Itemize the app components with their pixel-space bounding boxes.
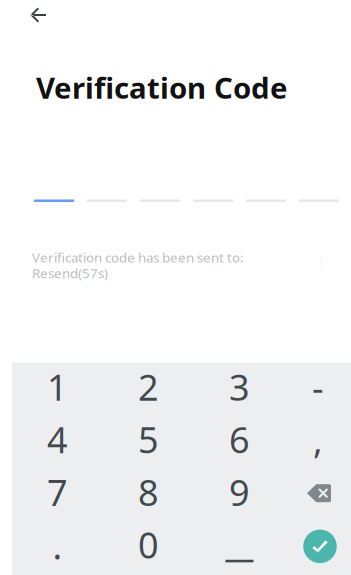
staticText: ,: [313, 415, 323, 463]
staticText: 9: [229, 468, 250, 516]
staticText: .: [52, 522, 62, 569]
button[interactable]: 9: [194, 466, 285, 518]
button[interactable]: 0: [103, 518, 194, 571]
staticText: 1: [47, 363, 68, 411]
staticText: 6: [229, 415, 250, 463]
button[interactable]: Comma: [285, 413, 351, 466]
staticText: -: [312, 363, 324, 411]
button[interactable]: 8: [103, 466, 194, 518]
staticText: 0: [138, 521, 159, 568]
staticText: Verification code has been sent to:: [32, 249, 244, 266]
staticText: 4: [47, 415, 68, 463]
staticText: Resend(57s): [32, 264, 108, 282]
staticText: 2: [138, 363, 159, 411]
button[interactable]: Confirm: [285, 518, 351, 571]
staticText: 7: [47, 468, 68, 516]
button[interactable]: Delete: [285, 466, 351, 518]
button[interactable]: 3: [194, 360, 285, 413]
button[interactable]: 4: [12, 413, 103, 466]
button[interactable]: 6: [194, 413, 285, 466]
button[interactable]: 2: [103, 360, 194, 413]
button[interactable]: 5: [103, 413, 194, 466]
button[interactable]: [194, 518, 285, 571]
staticText: 3: [229, 363, 250, 411]
button[interactable]: .: [12, 518, 103, 571]
button[interactable]: Dash: [285, 360, 351, 413]
button[interactable]: 1: [12, 360, 103, 413]
staticText: 5: [138, 415, 159, 463]
staticText: 8: [138, 468, 159, 516]
button[interactable]: Resend(57s): [32, 264, 108, 282]
staticText: i: [320, 253, 323, 269]
button[interactable]: 7: [12, 466, 103, 518]
staticText: Verification Code: [36, 68, 288, 107]
button[interactable]: Back: [0, 0, 61, 37]
